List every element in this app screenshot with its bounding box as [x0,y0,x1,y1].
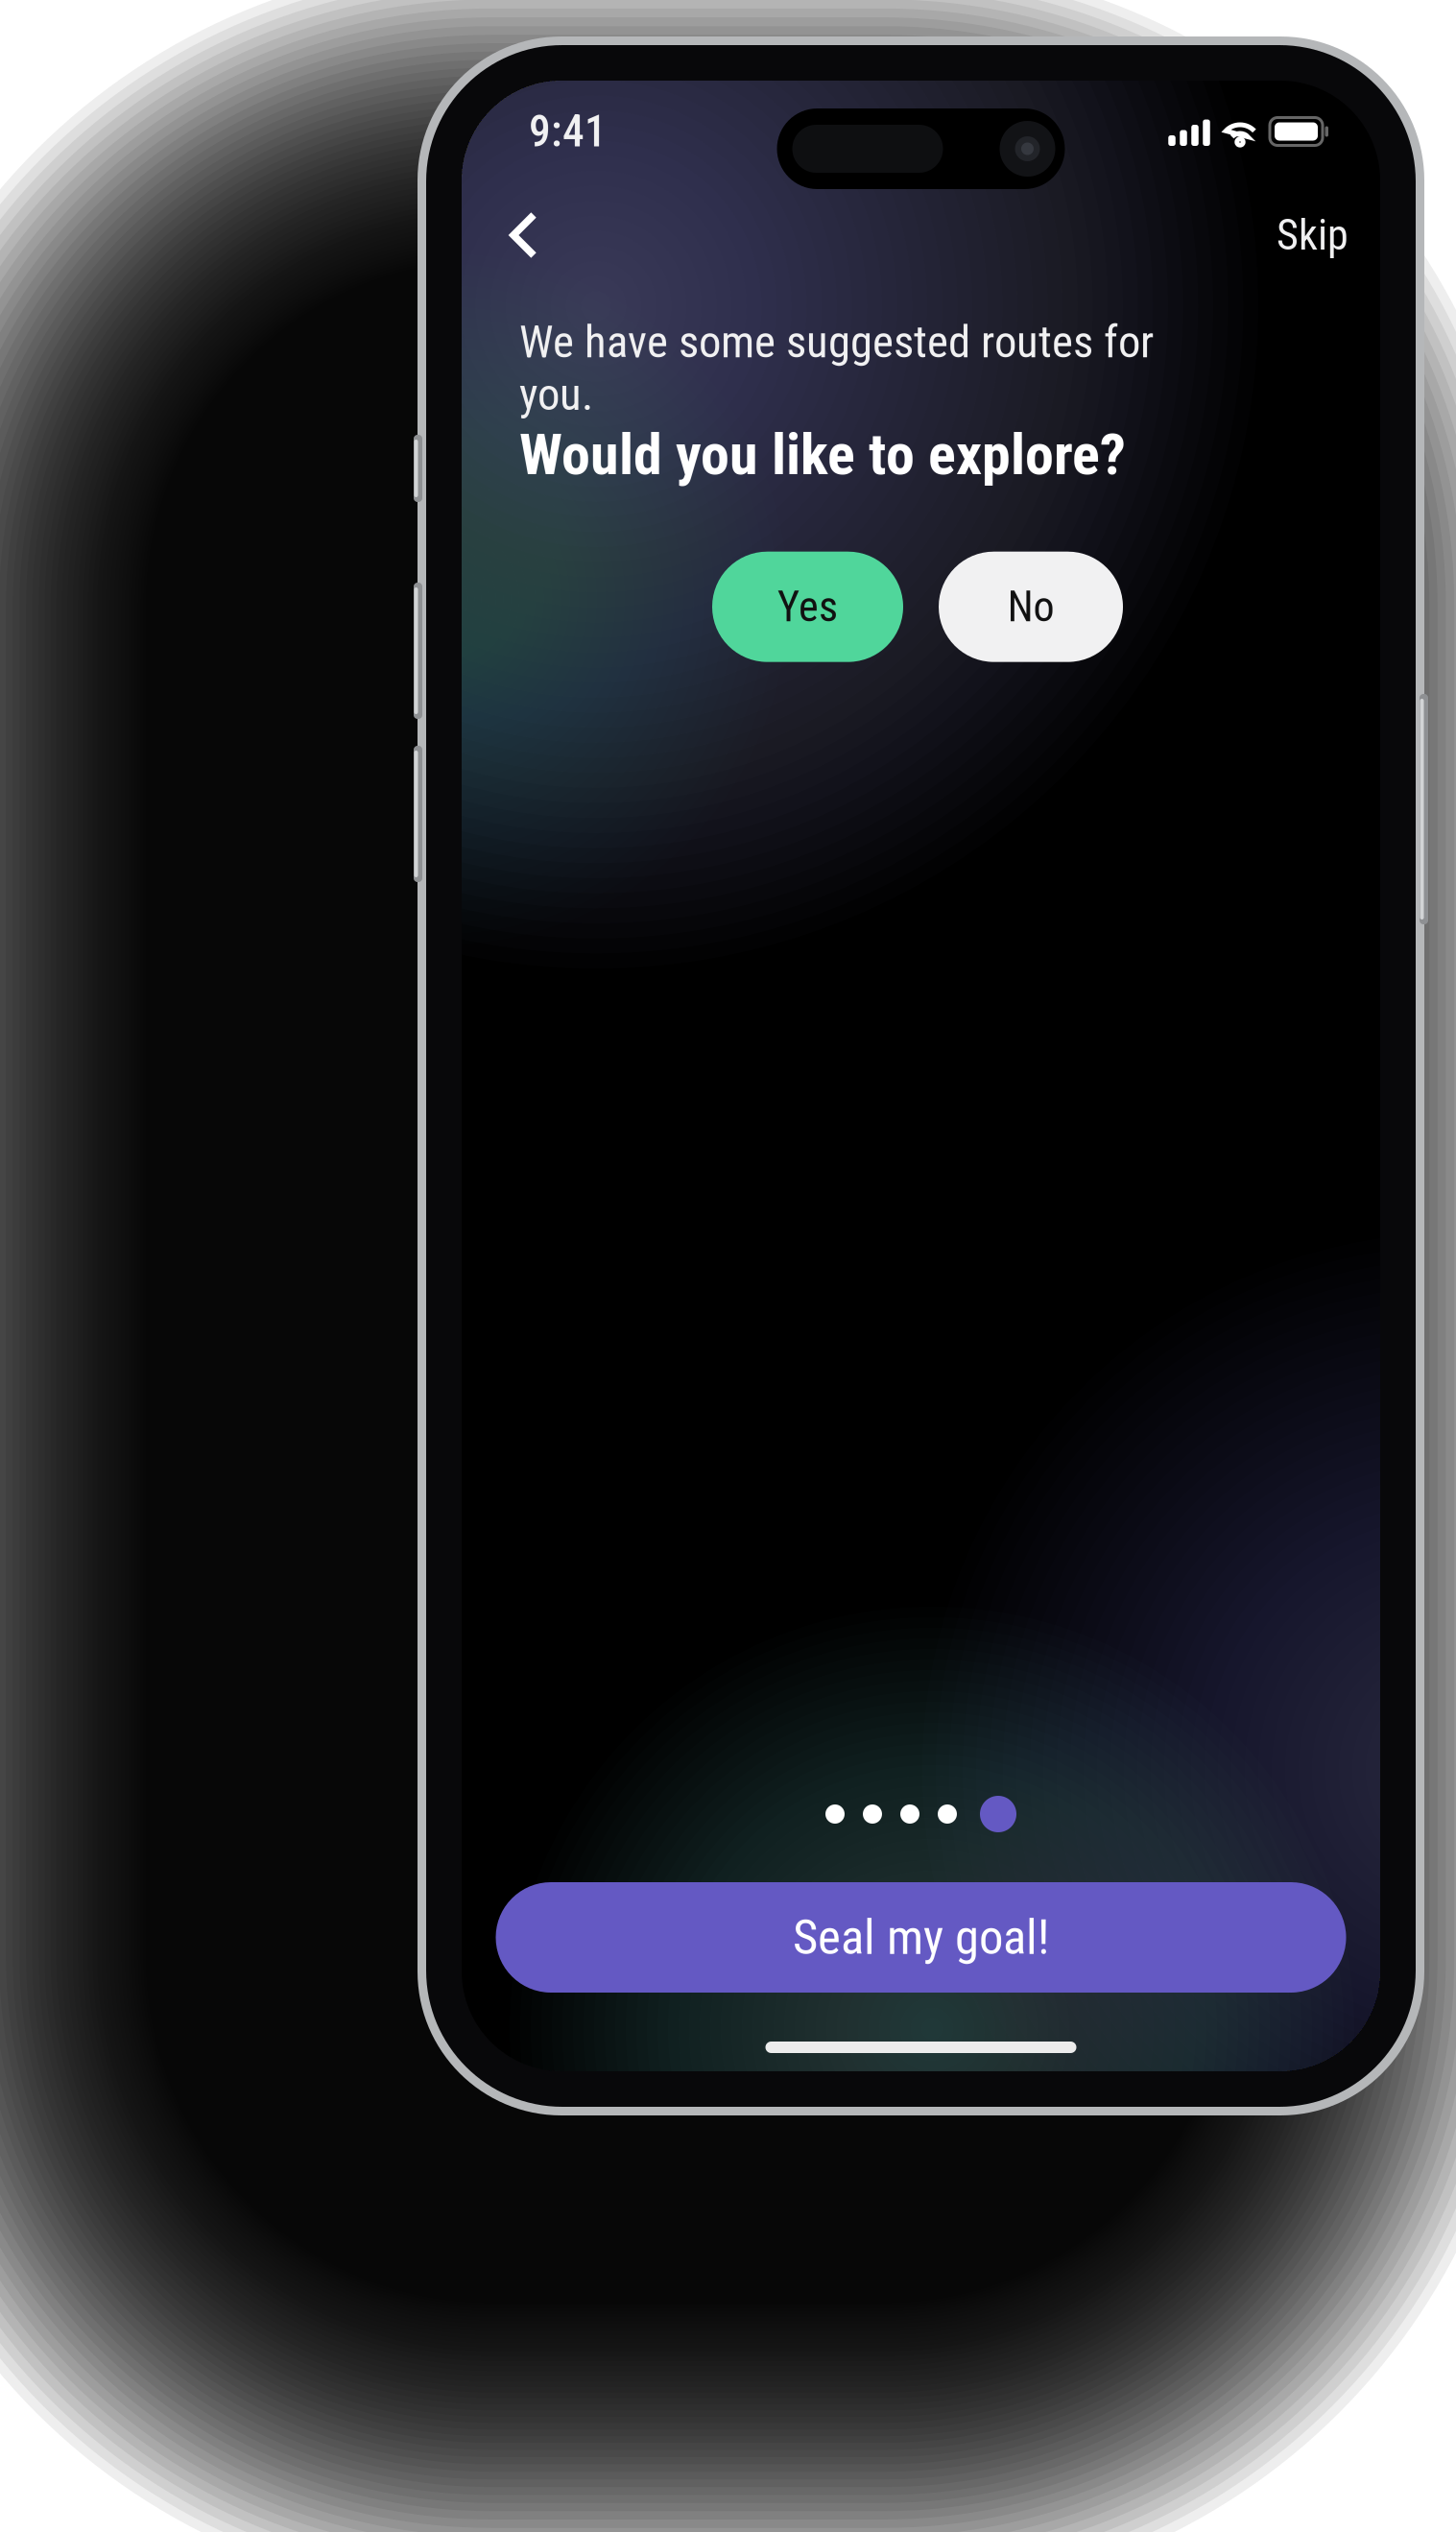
button[interactable]: Seal my goal! [496,1882,1346,1993]
staticText: Would you like to explore? [519,421,1126,488]
staticText: Seal my goal! [793,1909,1049,1966]
button[interactable]: Back [462,182,582,282]
staticText: Skip [1277,210,1349,260]
button[interactable]: Yes [712,552,903,662]
staticText: Yes [777,582,838,632]
staticText: 9:41 [529,106,607,157]
button[interactable]: No [939,552,1123,662]
staticText: We have some suggested routes for you. [519,316,1154,421]
button[interactable]: Skip [1232,182,1380,283]
staticText: No [1007,582,1054,632]
